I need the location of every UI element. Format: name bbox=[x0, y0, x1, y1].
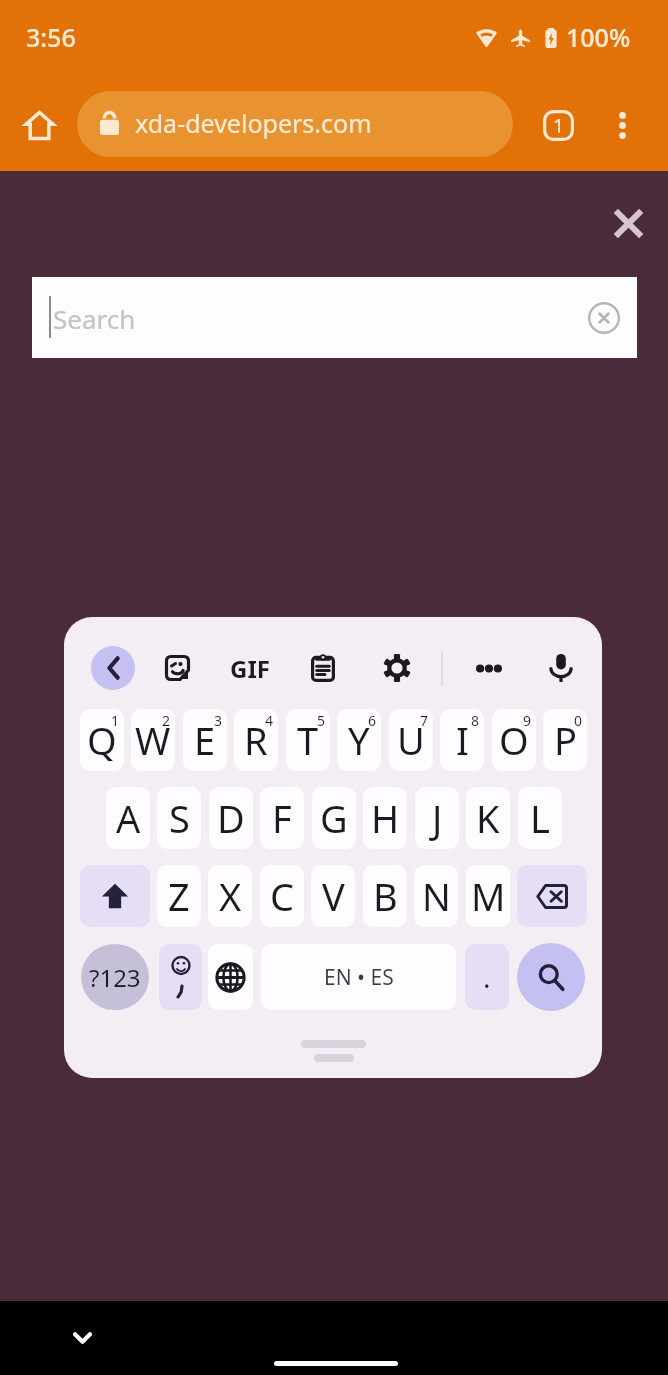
button[interactable]: GIF bbox=[223, 641, 277, 695]
button[interactable]: B bbox=[363, 865, 407, 927]
button[interactable]: Search bbox=[32, 277, 637, 358]
button[interactable]: . bbox=[465, 944, 509, 1010]
staticText: Q bbox=[87, 714, 117, 766]
button[interactable]: J bbox=[415, 787, 459, 849]
button[interactable]: Shift bbox=[80, 865, 150, 927]
staticText: V bbox=[322, 870, 345, 922]
button[interactable]: Emoji bbox=[159, 944, 202, 1010]
staticText: 3:56 bbox=[26, 20, 76, 54]
button[interactable]: N bbox=[414, 865, 458, 927]
staticText: T bbox=[297, 714, 319, 766]
button[interactable]: U bbox=[389, 709, 433, 771]
button[interactable]: D bbox=[209, 787, 253, 849]
staticText: . bbox=[483, 958, 491, 996]
button[interactable]: Tabs bbox=[528, 95, 588, 155]
staticText: 8 bbox=[471, 711, 480, 730]
staticText: 2 bbox=[162, 711, 171, 730]
button[interactable]: E bbox=[183, 709, 227, 771]
button[interactable]: V bbox=[311, 865, 355, 927]
button[interactable]: X bbox=[208, 865, 252, 927]
button[interactable]: Emoji bbox=[150, 641, 204, 695]
button[interactable]: S bbox=[157, 787, 201, 849]
button[interactable]: L bbox=[518, 787, 562, 849]
staticText: G bbox=[320, 792, 348, 844]
staticText: N bbox=[422, 870, 451, 922]
staticText: 1 bbox=[111, 711, 120, 730]
button[interactable]: Search bbox=[517, 943, 585, 1011]
staticText: O bbox=[499, 714, 529, 766]
button[interactable]: G bbox=[312, 787, 356, 849]
button[interactable]: Clear search bbox=[578, 292, 630, 344]
button[interactable]: P bbox=[543, 709, 587, 771]
staticText: D bbox=[217, 792, 245, 844]
staticText: C bbox=[270, 870, 295, 922]
staticText: W bbox=[135, 714, 171, 766]
button[interactable]: M bbox=[466, 865, 510, 927]
staticText: Z bbox=[168, 870, 190, 922]
button[interactable]: Y bbox=[337, 709, 381, 771]
button[interactable]: H bbox=[363, 787, 407, 849]
button[interactable]: Backspace bbox=[517, 865, 587, 927]
button[interactable]: EN • ES bbox=[261, 944, 456, 1010]
button[interactable]: Back bbox=[91, 646, 135, 690]
staticText: Y bbox=[348, 714, 370, 766]
button[interactable]: I bbox=[440, 709, 484, 771]
button[interactable]: F bbox=[260, 787, 304, 849]
button[interactable]: Settings bbox=[370, 641, 424, 695]
button[interactable]: More options bbox=[592, 95, 652, 155]
button[interactable]: Clipboard bbox=[296, 641, 350, 695]
staticText: K bbox=[476, 792, 500, 844]
staticText: U bbox=[397, 714, 425, 766]
staticText: 100% bbox=[566, 20, 631, 54]
staticText: J bbox=[432, 792, 443, 844]
staticText: 6 bbox=[368, 711, 377, 730]
button[interactable]: Q bbox=[80, 709, 124, 771]
staticText: I bbox=[456, 714, 469, 766]
staticText: S bbox=[169, 792, 190, 844]
button[interactable]: Z bbox=[157, 865, 201, 927]
staticText: 5 bbox=[317, 711, 326, 730]
staticText: A bbox=[116, 792, 141, 844]
button[interactable]: T bbox=[286, 709, 330, 771]
staticText: R bbox=[244, 714, 268, 766]
staticText: E bbox=[194, 714, 216, 766]
button[interactable]: R bbox=[234, 709, 278, 771]
button[interactable]: Home bbox=[9, 95, 69, 155]
staticText: 9 bbox=[523, 711, 532, 730]
staticText: H bbox=[371, 792, 400, 844]
button[interactable]: C bbox=[260, 865, 304, 927]
staticText: 4 bbox=[265, 711, 274, 730]
staticText: xda-developers.com bbox=[135, 106, 372, 140]
staticText: P bbox=[554, 714, 577, 766]
button[interactable]: A bbox=[106, 787, 150, 849]
staticText: 7 bbox=[420, 711, 429, 730]
button[interactable]: More bbox=[462, 641, 516, 695]
button[interactable]: Hide keyboard bbox=[55, 1311, 109, 1365]
staticText: 0 bbox=[574, 711, 583, 730]
staticText: L bbox=[530, 792, 550, 844]
button[interactable]: Voice input bbox=[534, 641, 588, 695]
staticText: F bbox=[272, 792, 292, 844]
staticText: M bbox=[471, 870, 506, 922]
button[interactable]: Change language bbox=[208, 944, 253, 1010]
button[interactable]: Close bbox=[598, 193, 658, 253]
staticText: Search bbox=[53, 301, 136, 336]
staticText: GIF bbox=[230, 652, 270, 685]
button[interactable]: W bbox=[131, 709, 175, 771]
button[interactable]: ?123 bbox=[81, 944, 149, 1010]
staticText: EN • ES bbox=[324, 963, 394, 992]
staticText: X bbox=[219, 870, 242, 922]
button[interactable]: xda-developers.com bbox=[77, 91, 513, 157]
button[interactable]: K bbox=[466, 787, 510, 849]
staticText: ?123 bbox=[89, 961, 141, 994]
staticText: 1 bbox=[553, 113, 564, 139]
staticText: B bbox=[373, 870, 398, 922]
button[interactable]: O bbox=[492, 709, 536, 771]
staticText: 3 bbox=[214, 711, 223, 730]
